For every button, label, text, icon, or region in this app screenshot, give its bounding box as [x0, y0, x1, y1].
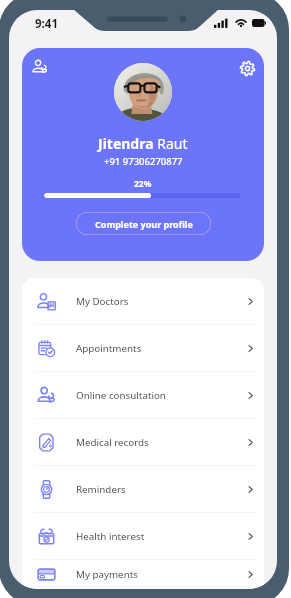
button[interactable]: Appointments [22, 325, 264, 371]
button[interactable]: My Doctors [22, 278, 264, 324]
staticText: Medical records [76, 436, 149, 449]
staticText: My payments [76, 568, 138, 581]
staticText: +91 97306270877 [104, 155, 183, 168]
button[interactable]: Complete your profile [76, 212, 211, 235]
staticText: Health interest [76, 530, 145, 543]
button[interactable]: Medical records [22, 419, 264, 465]
staticText: 9:41 [35, 16, 58, 32]
button[interactable]: Online consultation [22, 372, 264, 418]
button[interactable]: Reminders [22, 466, 264, 512]
button[interactable]: Settings [232, 53, 262, 83]
staticText: 22% [134, 178, 152, 190]
staticText: Complete your profile [95, 218, 193, 230]
button[interactable]: Health interest [22, 513, 264, 559]
staticText: Reminders [76, 483, 126, 496]
staticText: Online consultation [76, 389, 166, 402]
staticText: Jitendra Raut [98, 134, 188, 153]
button[interactable]: Add contact [25, 52, 55, 82]
button[interactable]: My payments [22, 560, 264, 589]
staticText: My Doctors [76, 295, 129, 308]
staticText: Appointments [76, 342, 142, 355]
